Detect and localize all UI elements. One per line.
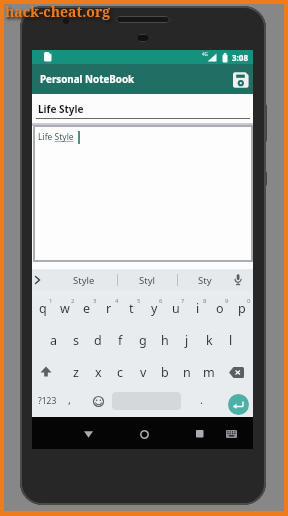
button[interactable]: a — [43, 326, 65, 354]
staticText: y — [151, 300, 158, 317]
staticText: v — [140, 364, 147, 381]
button[interactable] — [233, 274, 243, 286]
staticText: 4G — [202, 51, 208, 57]
button[interactable]: o — [209, 294, 231, 322]
button[interactable]: z — [65, 358, 87, 386]
button[interactable]: v — [132, 358, 154, 386]
staticText: d — [94, 332, 102, 349]
staticText: z — [73, 364, 79, 381]
staticText: c — [117, 364, 124, 381]
staticText: i — [196, 300, 200, 317]
staticText: 8 — [203, 297, 207, 305]
staticText: n — [183, 364, 191, 381]
button[interactable] — [190, 424, 210, 444]
staticText: m — [203, 364, 215, 381]
button[interactable]: k — [198, 326, 220, 354]
button[interactable] — [88, 391, 108, 411]
staticText: k — [206, 332, 213, 349]
staticText: . — [200, 392, 203, 407]
button[interactable] — [221, 424, 241, 443]
button[interactable]: s — [65, 326, 87, 354]
staticText: hack-cheat.org — [5, 2, 111, 21]
staticText: 5 — [137, 297, 141, 305]
staticText: s — [73, 332, 79, 349]
staticText: l — [229, 332, 233, 349]
staticText: h — [161, 332, 169, 349]
staticText: 3:08 — [232, 52, 248, 63]
staticText: , — [68, 392, 71, 407]
staticText: Styl — [139, 274, 155, 287]
button[interactable]: w — [54, 294, 76, 322]
staticText: b — [161, 364, 169, 381]
staticText: f — [118, 332, 123, 349]
button[interactable]: h — [154, 326, 176, 354]
button[interactable]: i — [187, 294, 209, 322]
button[interactable]: r — [98, 294, 120, 322]
button[interactable]: u — [165, 294, 187, 322]
button[interactable] — [32, 358, 60, 386]
button[interactable]: . — [193, 387, 209, 411]
staticText: o — [216, 300, 224, 317]
button[interactable]: e — [76, 294, 98, 322]
staticText: u — [172, 300, 180, 317]
button[interactable] — [228, 394, 249, 415]
button[interactable]: ?123 — [32, 389, 62, 413]
staticText: r — [106, 300, 112, 317]
button[interactable]: p — [231, 294, 253, 322]
staticText: Sty — [198, 274, 212, 287]
button[interactable] — [78, 424, 98, 444]
staticText: 2 — [71, 297, 75, 305]
button[interactable] — [230, 69, 252, 91]
staticText: g — [139, 332, 147, 349]
button[interactable]: q — [32, 294, 54, 322]
button[interactable]: n — [176, 358, 198, 386]
button[interactable] — [134, 424, 154, 444]
staticText: Life Style — [38, 102, 84, 116]
button[interactable]: j — [176, 326, 198, 354]
staticText: Personal NoteBook — [40, 73, 135, 86]
button[interactable]: , — [61, 387, 77, 411]
staticText: 3 — [93, 297, 97, 305]
staticText: e — [83, 300, 91, 317]
staticText: Style — [73, 274, 95, 287]
staticText: 1 — [49, 297, 53, 305]
button[interactable]: y — [143, 294, 165, 322]
button[interactable]: d — [87, 326, 109, 354]
staticText: 7 — [181, 297, 185, 305]
button[interactable] — [222, 358, 250, 386]
button[interactable]: x — [87, 358, 109, 386]
button[interactable]: Style — [56, 270, 112, 290]
staticText: ?123 — [38, 395, 57, 407]
button[interactable]: l — [220, 326, 242, 354]
button[interactable]: c — [109, 358, 131, 386]
staticText: w — [60, 300, 70, 317]
staticText: q — [39, 300, 47, 317]
staticText: p — [238, 300, 246, 317]
button[interactable]: Sty — [180, 270, 230, 290]
staticText: t — [129, 300, 134, 317]
button[interactable]: Styl — [121, 270, 173, 290]
button[interactable]: g — [132, 326, 154, 354]
staticText: j — [185, 332, 189, 349]
staticText: x — [95, 364, 102, 381]
staticText: 9 — [225, 297, 229, 305]
button[interactable]: t — [120, 294, 142, 322]
button[interactable]: f — [109, 326, 131, 354]
button[interactable]: b — [154, 358, 176, 386]
button[interactable]: m — [198, 358, 220, 386]
staticText: 0 — [247, 297, 251, 305]
staticText: 4 — [115, 297, 119, 305]
staticText: Life Style — [38, 131, 74, 143]
staticText: a — [50, 332, 58, 349]
staticText: 6 — [159, 297, 163, 305]
